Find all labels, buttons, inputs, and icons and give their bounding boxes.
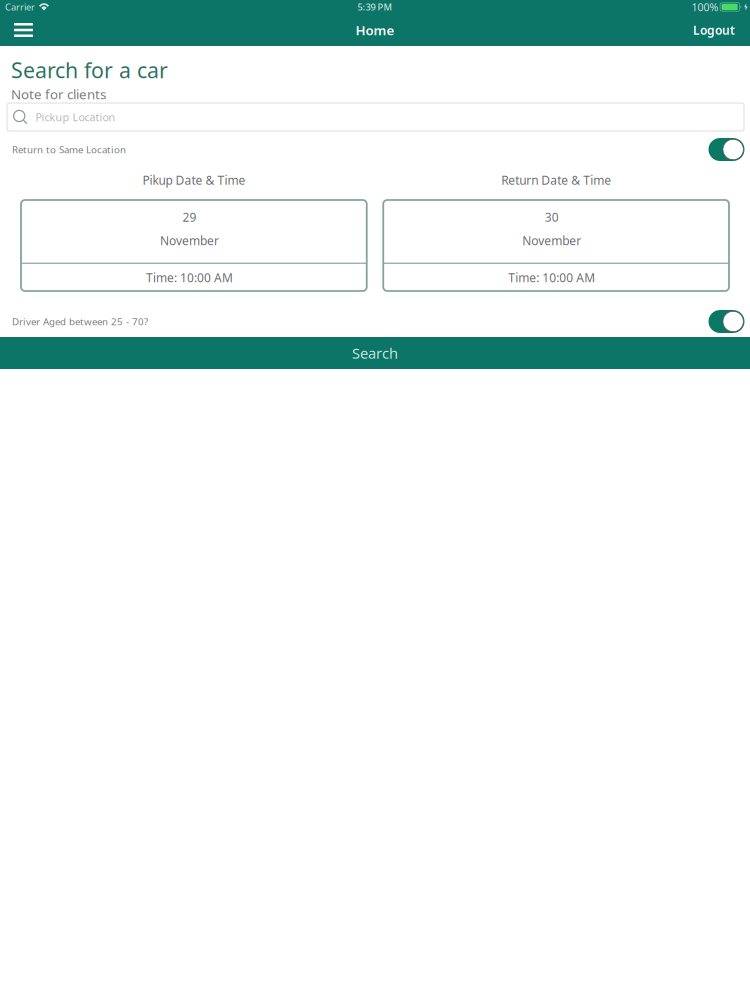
staticText: Search bbox=[352, 343, 398, 363]
staticText: Carrier bbox=[5, 1, 35, 13]
button[interactable]: Search bbox=[0, 337, 750, 369]
staticText: Return Date & Time bbox=[501, 172, 611, 188]
staticText: Logout bbox=[693, 22, 735, 38]
button[interactable]: 30 bbox=[383, 200, 729, 291]
staticText: 30 bbox=[545, 209, 559, 225]
button[interactable]: 29 bbox=[21, 200, 367, 291]
staticText: Search for a car bbox=[11, 56, 168, 84]
button[interactable]: Menu bbox=[0, 15, 45, 45]
button[interactable]: Logout bbox=[681, 14, 750, 46]
staticText: Home bbox=[355, 21, 394, 39]
staticText: 100% bbox=[692, 0, 719, 14]
staticText: 29 bbox=[182, 209, 196, 225]
staticText: Pickup Location bbox=[35, 110, 115, 124]
staticText: Note for clients bbox=[11, 85, 106, 103]
staticText: 5:39 PM bbox=[357, 1, 392, 13]
staticText: Driver Aged between 25 - 70? bbox=[12, 315, 148, 328]
staticText: Pikup Date & Time bbox=[142, 172, 245, 188]
button[interactable]: Driver aged between 25 and 70 bbox=[708, 310, 744, 333]
staticText: Time: 10:00 AM bbox=[508, 269, 595, 285]
button[interactable]: Return to same location bbox=[708, 138, 744, 161]
staticText: November bbox=[160, 232, 219, 248]
staticText: November bbox=[522, 232, 581, 248]
staticText: Return to Same Location bbox=[12, 143, 126, 156]
staticText: Time: 10:00 AM bbox=[146, 269, 233, 285]
